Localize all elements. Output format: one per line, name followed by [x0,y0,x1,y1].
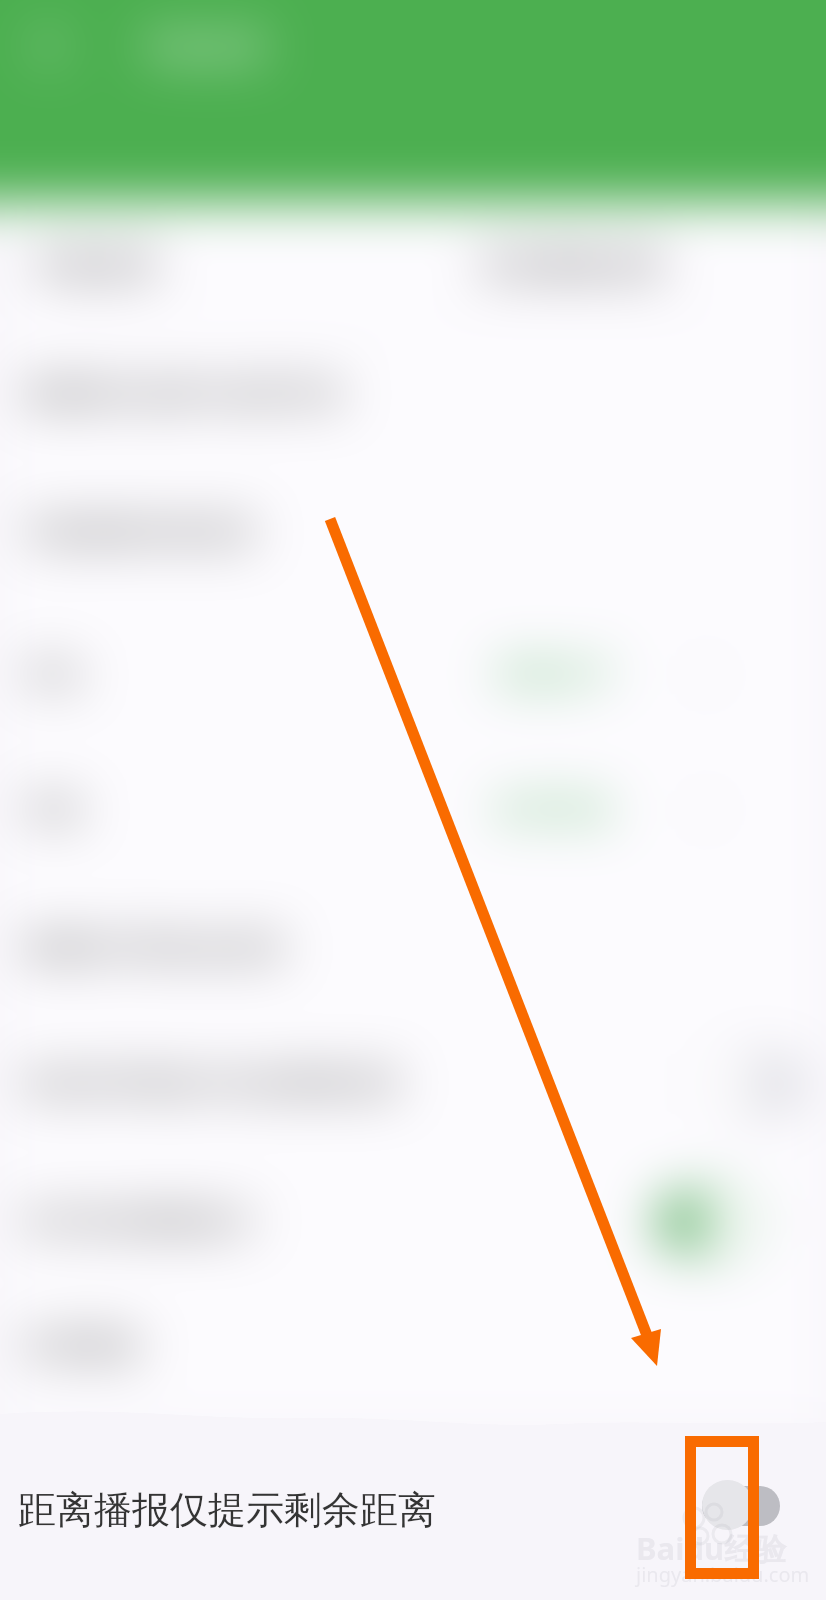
staticText: 导航播报音量设置 [24,514,256,551]
staticText: 前方路况播报提示 [24,1203,256,1240]
staticText: 距离播报 [24,1328,140,1365]
button[interactable]: 语音播报设置 [452,208,692,322]
button[interactable]: 距离播报仅提示剩余距离 [0,1430,826,1590]
staticText: jingyan.baidu.com [636,1561,810,1588]
button[interactable]: 已开启 [655,1191,759,1253]
button[interactable]: 距离播报 [0,1278,826,1415]
button[interactable]: 前方路况播报提示 [0,1153,826,1290]
button[interactable]: 语速 [0,741,826,878]
button[interactable]: 常规设置 [16,208,176,322]
staticText: 导航设置 [142,28,266,67]
staticText: 语音播报设置 [479,246,665,285]
staticText: 标准语速 [496,791,612,828]
button[interactable]: 播报模式选择与设置详情 [0,326,826,463]
button[interactable]: 路况及导航提示信息播报设置 [0,1015,826,1152]
staticText: 常规设置 [34,246,158,285]
staticText: 距离播报仅提示剩余距离 [18,1486,436,1534]
button[interactable]: 已关闭 [700,1053,804,1115]
button[interactable]: 导航播报音量设置 [0,464,826,601]
button[interactable]: 音色 [0,606,826,743]
button[interactable]: 播报电子眼信息设置 [0,880,826,1017]
staticText: 普通女声 [496,656,612,693]
button[interactable]: 距离播报开关，已关闭 [702,1480,780,1530]
staticText: Baidu经验 [636,1527,787,1569]
